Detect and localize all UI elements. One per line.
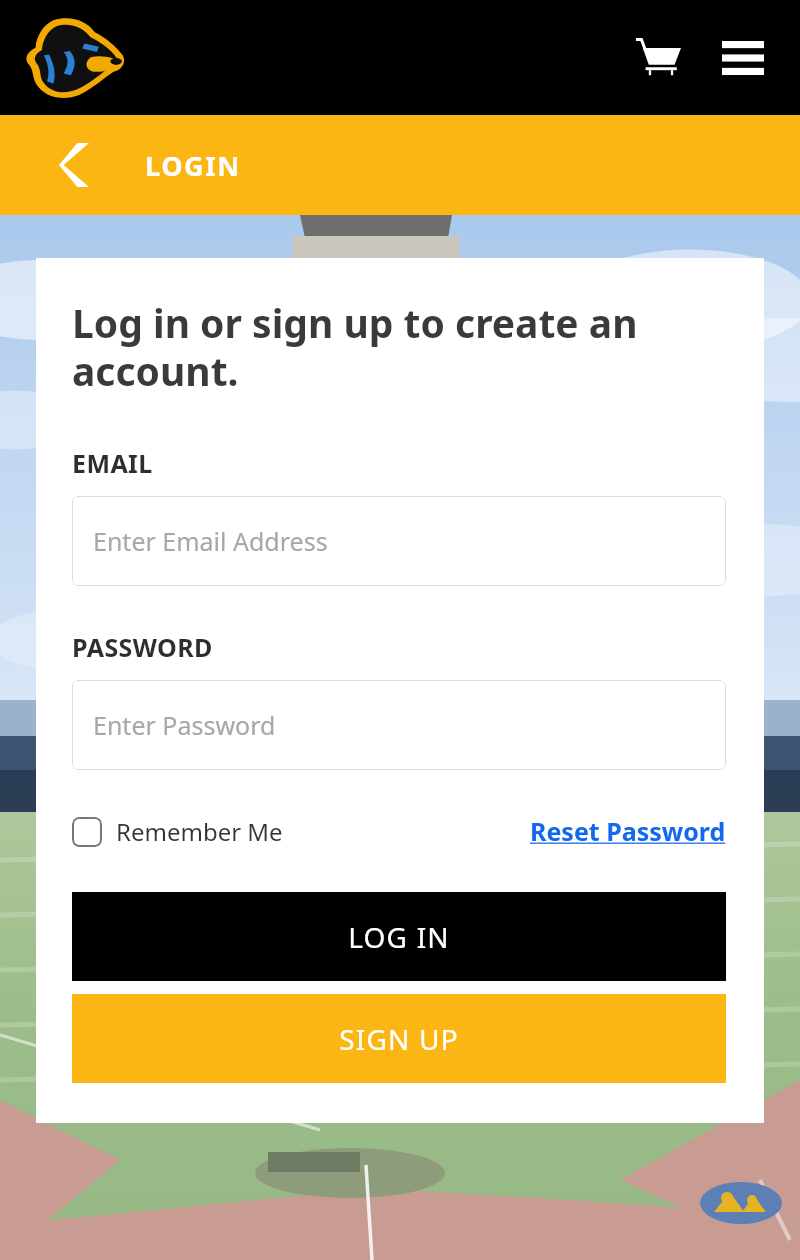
staticText: PASSWORD	[72, 630, 213, 664]
button[interactable]: Enter Email Address	[72, 496, 726, 586]
staticText: EMAIL	[72, 446, 153, 480]
staticText: Enter Password	[93, 708, 276, 742]
staticText: Remember Me	[116, 815, 283, 848]
staticText: SIGN UP	[339, 1020, 459, 1058]
button[interactable]: Cart	[626, 26, 690, 90]
staticText: Enter Email Address	[93, 524, 328, 558]
button[interactable]: SIGN UP	[72, 994, 726, 1083]
button[interactable]: Back	[48, 135, 100, 195]
button[interactable]: Remember Me	[72, 815, 283, 848]
button[interactable]: Menu	[712, 27, 774, 89]
staticText: Reset Password	[530, 814, 726, 848]
staticText: Log in or sign up to create an account.	[72, 296, 726, 398]
button[interactable]: LOG IN	[72, 892, 726, 981]
staticText: LOG IN	[348, 918, 450, 956]
button[interactable]: Enter Password	[72, 680, 726, 770]
button[interactable]: Reset Password	[530, 814, 726, 848]
staticText: LOGIN	[145, 147, 241, 184]
button[interactable]: Home	[22, 15, 126, 101]
